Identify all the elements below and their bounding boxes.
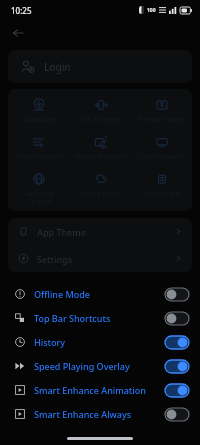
staticText: 100 xyxy=(147,7,156,14)
staticText: Login xyxy=(44,60,71,74)
staticText: Offline Mode xyxy=(34,288,165,300)
button[interactable]: App Theme xyxy=(8,218,192,245)
button[interactable]: Local Network xyxy=(131,131,192,168)
staticText: Settings xyxy=(37,253,175,265)
button[interactable]: Off xyxy=(165,408,189,421)
button[interactable]: Media Manager xyxy=(70,131,131,168)
button[interactable]: Settings xyxy=(8,245,192,272)
button[interactable]: File Transfer xyxy=(70,94,131,131)
button[interactable]: Recycle Bin xyxy=(131,168,192,205)
button[interactable]: Login xyxy=(8,50,192,83)
button[interactable]: Off xyxy=(165,312,189,325)
button[interactable]: Network Stream xyxy=(8,168,70,205)
button[interactable]: On xyxy=(165,360,189,373)
button[interactable]: Speed Playing Overlay xyxy=(0,354,200,378)
button[interactable]: On xyxy=(165,384,189,397)
button[interactable]: Private Folder xyxy=(131,94,192,131)
staticText: Top Bar Shortcuts xyxy=(34,312,165,324)
staticText: 10:25 xyxy=(11,5,32,16)
button[interactable]: Cloud Drive xyxy=(70,168,131,205)
staticText: App Theme xyxy=(37,226,175,238)
staticText: Smart Enhance Always xyxy=(34,408,165,420)
button[interactable]: Offline Mode xyxy=(0,282,200,306)
button[interactable]: Downloads xyxy=(8,94,70,131)
button[interactable]: Off xyxy=(165,288,189,301)
button[interactable]: Video Playlists xyxy=(8,131,70,168)
button[interactable]: Smart Enhance Always xyxy=(0,402,200,426)
button[interactable]: On xyxy=(165,336,189,349)
button[interactable]: Smart Enhance Animation xyxy=(0,378,200,402)
staticText: Smart Enhance Animation xyxy=(34,384,165,396)
button[interactable]: History xyxy=(0,330,200,354)
button[interactable]: Back xyxy=(7,22,29,44)
staticText: History xyxy=(34,336,165,348)
staticText: Speed Playing Overlay xyxy=(34,360,165,372)
button[interactable]: Top Bar Shortcuts xyxy=(0,306,200,330)
